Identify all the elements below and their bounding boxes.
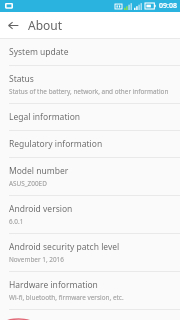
staticText: ASUS_Z00ED [9, 179, 47, 188]
button[interactable]: Software information [0, 310, 180, 320]
staticText: Android version [9, 203, 73, 215]
button[interactable]: Back [5, 17, 22, 34]
staticText: System update [9, 46, 69, 58]
staticText: Android security patch level [9, 241, 120, 253]
staticText: About [28, 17, 63, 33]
staticText: 09:08 [159, 1, 177, 11]
staticText: Wi-fi, bluetooth, firmware version, etc. [9, 293, 124, 302]
button[interactable]: Android version [0, 196, 180, 234]
button[interactable]: Android security patch level [0, 234, 180, 272]
button[interactable]: Legal information [0, 104, 180, 131]
button[interactable]: Regulatory information [0, 131, 180, 158]
staticText: Legal information [9, 111, 81, 123]
staticText: 6.0.1 [9, 217, 24, 226]
staticText: Hardware information [9, 279, 98, 291]
button[interactable]: Model number [0, 158, 180, 196]
staticText: Status of the battery, network, and othe… [9, 87, 169, 96]
staticText: November 1, 2016 [9, 255, 64, 264]
button[interactable]: Hardware information [0, 272, 180, 310]
staticText: Model number [9, 165, 69, 177]
button[interactable]: System update [0, 39, 180, 66]
staticText: Status [9, 73, 34, 85]
staticText: Regulatory information [9, 138, 103, 150]
button[interactable]: Status [0, 66, 180, 104]
